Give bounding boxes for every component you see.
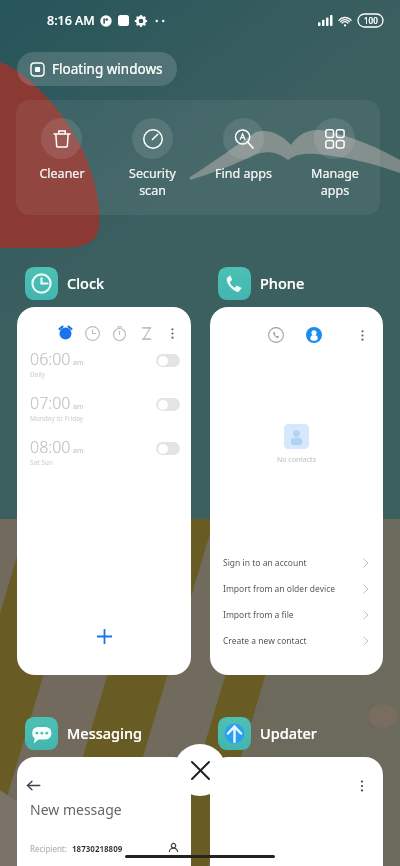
button[interactable]: Floating windows	[17, 52, 177, 86]
button[interactable]: More options	[210, 757, 383, 866]
staticText: Clock	[67, 273, 105, 293]
button[interactable]: 08:00	[17, 429, 191, 473]
staticText: Import from a file	[223, 609, 294, 621]
button[interactable]: 06:00	[17, 307, 191, 675]
button[interactable]: Sign in to an account	[210, 550, 383, 576]
staticText: Import from an older device	[223, 583, 336, 595]
button[interactable]: Toggle alarm	[156, 442, 180, 455]
button[interactable]: Import from a file	[210, 602, 383, 628]
button[interactable]: 06:00	[17, 341, 191, 385]
button[interactable]: Messaging	[25, 716, 143, 750]
staticText: Recipient:	[30, 843, 67, 854]
button[interactable]: Import from an older device	[210, 576, 383, 602]
button[interactable]: Back	[26, 778, 41, 793]
staticText: 100	[364, 15, 378, 26]
staticText: New message	[30, 800, 122, 819]
button[interactable]: Toggle alarm	[156, 398, 180, 411]
staticText: Phone	[260, 273, 305, 293]
staticText: Floating windows	[52, 60, 163, 78]
button[interactable]: Close all	[174, 744, 226, 796]
button[interactable]: Phone	[218, 266, 305, 300]
staticText: am	[73, 402, 84, 412]
button[interactable]: Cleaner	[16, 118, 107, 182]
button[interactable]: Toggle alarm	[156, 354, 180, 367]
staticText: Create a new contact	[223, 635, 307, 647]
staticText: Security scan	[129, 165, 176, 198]
staticText: Monday to Friday	[30, 414, 84, 423]
staticText: No contacts	[277, 455, 316, 465]
button[interactable]: Security scan	[107, 118, 198, 198]
staticText: Sign in to an account	[223, 557, 307, 569]
staticText: Daily	[30, 370, 46, 379]
staticText: Manage apps	[311, 165, 359, 198]
staticText: am	[73, 446, 84, 456]
staticText: Find apps	[215, 165, 272, 182]
button[interactable]: Add alarm	[89, 621, 119, 651]
button[interactable]: No contacts	[210, 307, 383, 675]
staticText: am	[73, 358, 84, 368]
button[interactable]: Updater	[218, 716, 317, 750]
staticText: Messaging	[67, 723, 143, 743]
button[interactable]	[355, 328, 370, 343]
staticText: 07:00	[30, 392, 71, 414]
staticText: Sat Sun	[30, 458, 53, 467]
staticText: 06:00	[30, 348, 71, 370]
button[interactable]: 07:00	[17, 385, 191, 429]
button[interactable]	[166, 326, 179, 341]
button[interactable]: Find apps	[198, 118, 289, 182]
staticText: Cleaner	[39, 165, 85, 182]
button[interactable]: Clock	[25, 266, 105, 300]
staticText: 8:16 AM	[47, 12, 95, 29]
button[interactable]: Back	[17, 757, 191, 866]
staticText: 18730218809	[72, 843, 123, 854]
button[interactable]: Create a new contact	[210, 628, 383, 654]
staticText: 08:00	[30, 436, 71, 458]
staticText: Updater	[260, 723, 317, 743]
button[interactable]: More options	[355, 779, 369, 793]
button[interactable]: Manage apps	[289, 118, 380, 198]
